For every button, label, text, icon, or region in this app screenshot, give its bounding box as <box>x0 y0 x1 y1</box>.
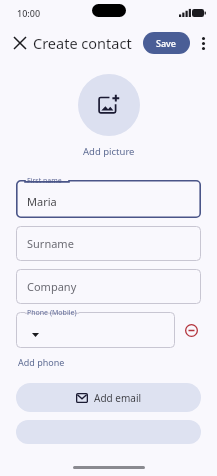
staticText: Create contact <box>33 33 132 53</box>
button[interactable]: First name <box>16 180 201 218</box>
button[interactable]: Add picture <box>78 74 140 136</box>
staticText: Phone (Mobile) <box>27 308 77 318</box>
staticText: First name <box>27 176 62 186</box>
button[interactable]: Save <box>143 32 190 54</box>
staticText: Surname <box>27 236 74 251</box>
button[interactable]: Company <box>16 269 201 304</box>
staticText: Maria <box>27 194 57 209</box>
staticText: Add picture <box>83 145 135 158</box>
button[interactable]: Add address <box>16 420 201 444</box>
button[interactable]: Remove phone <box>181 320 201 340</box>
staticText: 10:00 <box>17 7 41 19</box>
button[interactable]: More options <box>191 31 215 55</box>
button[interactable]: Close <box>7 30 33 56</box>
staticText: Add email <box>94 391 142 405</box>
staticText: Save <box>156 37 177 49</box>
button[interactable]: Phone type <box>28 328 42 342</box>
button[interactable]: Add phone <box>16 355 65 369</box>
button[interactable]: Surname <box>16 226 201 261</box>
button[interactable]: Add email <box>16 383 201 412</box>
button[interactable]: Phone (Mobile) <box>16 312 175 348</box>
staticText: Company <box>27 279 77 294</box>
